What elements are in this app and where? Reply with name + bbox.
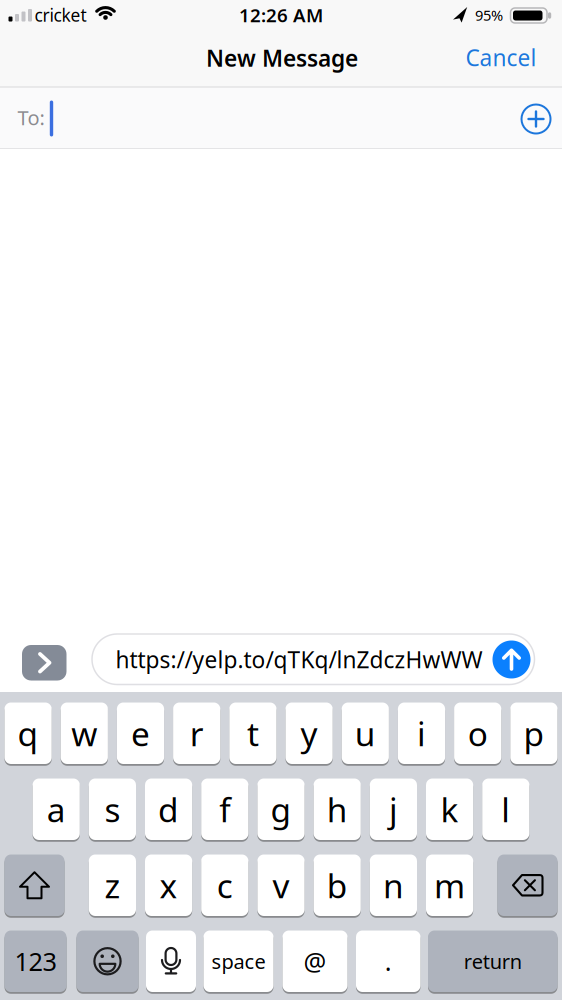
staticText: k bbox=[441, 787, 459, 831]
button[interactable]: Delete bbox=[497, 853, 557, 917]
staticText: z bbox=[104, 863, 120, 907]
staticText: l bbox=[501, 787, 510, 831]
staticText: s bbox=[104, 787, 120, 831]
staticText: a bbox=[47, 787, 66, 831]
button[interactable]: Cancel bbox=[465, 42, 536, 72]
button[interactable]: j bbox=[370, 777, 417, 841]
button[interactable]: y bbox=[285, 701, 333, 765]
button[interactable]: g bbox=[257, 777, 305, 841]
staticText: h bbox=[327, 787, 348, 831]
staticText: r bbox=[190, 711, 204, 755]
staticText: . bbox=[385, 944, 392, 978]
staticText: return bbox=[464, 948, 522, 975]
staticText: o bbox=[468, 711, 488, 755]
staticText: m bbox=[434, 863, 465, 907]
button[interactable]: 123 bbox=[4, 929, 66, 993]
button[interactable]: f bbox=[201, 777, 248, 841]
button[interactable]: Send bbox=[492, 640, 530, 678]
button[interactable]: l bbox=[482, 777, 529, 841]
button[interactable]: x bbox=[145, 853, 192, 917]
button[interactable]: p bbox=[510, 701, 557, 765]
button[interactable]: k bbox=[426, 777, 473, 841]
staticText: cricket bbox=[34, 3, 86, 26]
button[interactable]: Shift bbox=[4, 853, 64, 917]
staticText: x bbox=[160, 863, 178, 907]
staticText: t bbox=[247, 711, 259, 755]
button[interactable]: h bbox=[314, 777, 361, 841]
button[interactable]: t bbox=[229, 701, 276, 765]
staticText: y bbox=[301, 711, 318, 755]
staticText: @ bbox=[303, 944, 326, 978]
button[interactable]: e bbox=[117, 701, 164, 765]
button[interactable]: c bbox=[201, 853, 248, 917]
staticText: p bbox=[523, 711, 544, 755]
button[interactable]: z bbox=[89, 853, 136, 917]
staticText: 95% bbox=[475, 5, 503, 25]
button[interactable]: Emoji bbox=[76, 929, 138, 993]
button[interactable]: space bbox=[203, 929, 273, 993]
button[interactable]: Expand Apps bbox=[22, 645, 66, 680]
staticText: q bbox=[18, 711, 39, 755]
button[interactable]: . bbox=[356, 929, 420, 993]
staticText: g bbox=[270, 787, 291, 831]
button[interactable]: v bbox=[257, 853, 305, 917]
button[interactable]: q bbox=[4, 701, 52, 765]
button[interactable]: m bbox=[426, 853, 473, 917]
staticText: e bbox=[131, 711, 150, 755]
button[interactable]: r bbox=[173, 701, 220, 765]
staticText: d bbox=[158, 787, 179, 831]
staticText: https://yelp.to/qTKq/lnZdczHwWW bbox=[115, 644, 482, 674]
button[interactable]: s bbox=[89, 777, 136, 841]
button[interactable]: o bbox=[454, 701, 501, 765]
staticText: n bbox=[383, 863, 404, 907]
staticText: New Message bbox=[206, 43, 358, 73]
button[interactable]: @ bbox=[282, 929, 347, 993]
button[interactable]: i bbox=[398, 701, 445, 765]
button[interactable]: b bbox=[314, 853, 361, 917]
staticText: b bbox=[327, 863, 348, 907]
staticText: To: bbox=[17, 104, 44, 131]
button[interactable]: d bbox=[145, 777, 192, 841]
button[interactable]: Dictate bbox=[146, 929, 196, 993]
staticText: 12:26 AM bbox=[239, 3, 323, 27]
button[interactable]: u bbox=[342, 701, 389, 765]
staticText: Cancel bbox=[465, 42, 536, 72]
button[interactable]: a bbox=[33, 777, 80, 841]
staticText: j bbox=[389, 787, 398, 831]
staticText: f bbox=[219, 787, 230, 831]
button[interactable]: return bbox=[428, 929, 557, 993]
staticText: v bbox=[272, 863, 289, 907]
button[interactable]: Add Contact bbox=[521, 104, 550, 133]
button[interactable]: w bbox=[61, 701, 108, 765]
button[interactable]: n bbox=[370, 853, 417, 917]
staticText: w bbox=[71, 711, 97, 755]
staticText: space bbox=[211, 948, 265, 975]
staticText: i bbox=[417, 711, 426, 755]
staticText: c bbox=[217, 863, 233, 907]
staticText: u bbox=[355, 711, 376, 755]
staticText: 123 bbox=[14, 944, 56, 978]
